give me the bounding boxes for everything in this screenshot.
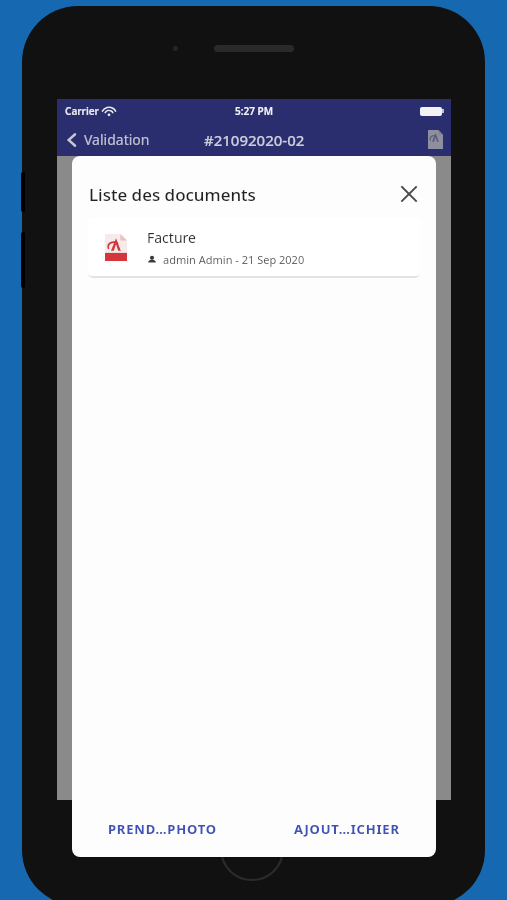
staticText: Carrier	[65, 104, 99, 118]
button[interactable]: PREND…PHOTO	[100, 812, 225, 846]
staticText: Validation	[84, 130, 150, 149]
staticText: PREND…PHOTO	[108, 820, 217, 838]
staticText: 5:27 PM	[235, 104, 273, 118]
staticText: Facture	[147, 228, 196, 247]
staticText: AJOUT…ICHIER	[294, 820, 400, 838]
staticText: admin Admin - 21 Sep 2020	[163, 252, 305, 267]
button[interactable]: Close	[396, 181, 422, 207]
staticText: Liste des documents	[89, 183, 256, 206]
button[interactable]: AJOUT…ICHIER	[286, 812, 408, 846]
button[interactable]: Facture	[88, 218, 420, 276]
button[interactable]: Validation	[57, 130, 156, 149]
staticText: #21092020-02	[204, 130, 305, 150]
button[interactable]: Open PDF	[420, 130, 451, 149]
